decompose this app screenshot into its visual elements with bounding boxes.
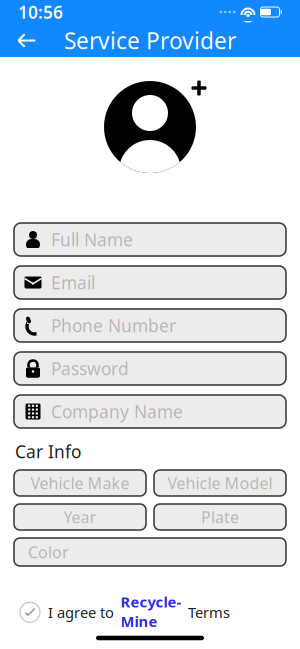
staticText: Plate: [201, 506, 239, 528]
staticText: Terms: [184, 602, 230, 622]
staticText: Vehicle Model: [167, 472, 272, 494]
staticText: Service Provider: [64, 25, 236, 55]
button[interactable]: Plate: [154, 504, 286, 530]
staticText: Company Name: [51, 400, 183, 423]
button[interactable]: Back: [10, 25, 44, 55]
staticText: Email: [51, 271, 95, 294]
button[interactable]: Full Name: [14, 223, 286, 256]
staticText: Password: [51, 357, 129, 380]
button[interactable]: Company Name: [14, 395, 286, 428]
staticText: Full Name: [51, 228, 133, 251]
staticText: Color: [28, 541, 69, 563]
button[interactable]: Add profile photo: [91, 79, 209, 175]
staticText: Car Info: [15, 440, 81, 463]
button[interactable]: Vehicle Model: [154, 470, 286, 496]
button[interactable]: Year: [14, 504, 146, 530]
staticText: I agree to: [48, 602, 118, 622]
staticText: Phone Number: [51, 314, 176, 337]
staticText: Year: [63, 506, 96, 528]
button[interactable]: Vehicle Make: [14, 470, 146, 496]
button[interactable]: RecycleMine: [118, 592, 184, 632]
button[interactable]: Email: [14, 266, 286, 299]
staticText: Vehicle Make: [30, 472, 129, 494]
button[interactable]: Color: [14, 538, 286, 566]
button[interactable]: Password: [14, 352, 286, 385]
staticText: 10:56: [18, 0, 63, 23]
button[interactable]: I agree to terms: [17, 599, 43, 625]
button[interactable]: Phone Number: [14, 309, 286, 342]
staticText: RecycleMine: [120, 592, 181, 631]
